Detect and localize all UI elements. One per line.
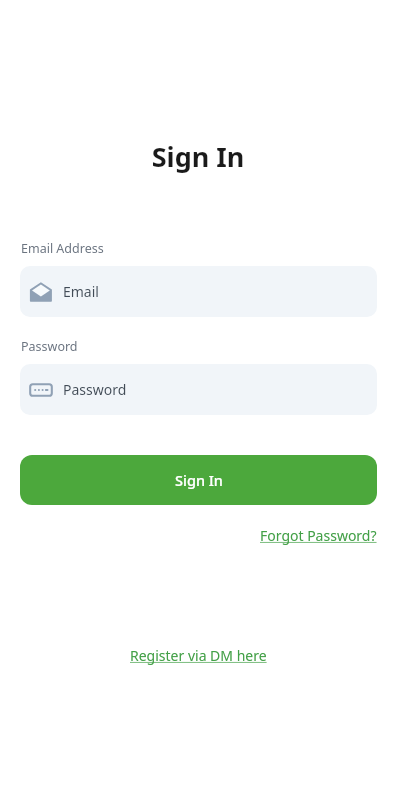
staticText: Sign In bbox=[0, 138, 396, 175]
staticText: Forgot Password? bbox=[260, 526, 377, 545]
staticText: Register via DM here bbox=[130, 646, 267, 665]
staticText: Email bbox=[63, 282, 99, 301]
staticText: Email Address bbox=[21, 240, 104, 257]
staticText: Sign In bbox=[175, 470, 223, 490]
staticText: Password bbox=[63, 380, 127, 399]
button[interactable]: Sign In bbox=[20, 455, 377, 505]
button[interactable]: Forgot Password? bbox=[260, 526, 377, 545]
button[interactable]: Email bbox=[20, 266, 377, 317]
button[interactable]: Password bbox=[20, 364, 377, 415]
button[interactable]: Register via DM here bbox=[130, 646, 267, 665]
staticText: Password bbox=[21, 338, 78, 355]
